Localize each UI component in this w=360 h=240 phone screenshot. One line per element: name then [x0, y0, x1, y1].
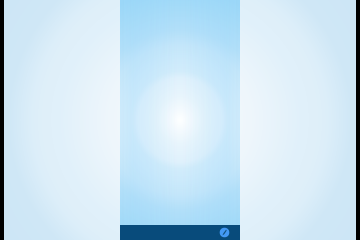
button[interactable]: Compose: [217, 225, 232, 240]
